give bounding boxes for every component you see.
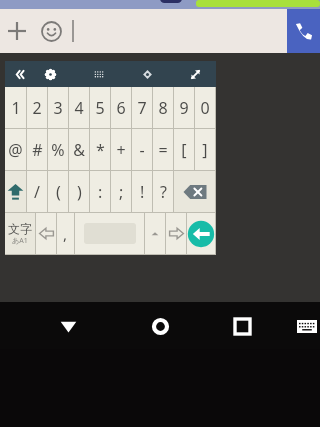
button[interactable]: 3 — [48, 87, 68, 128]
staticText: ? — [160, 181, 167, 203]
button[interactable]: 0 — [195, 87, 215, 128]
button[interactable]: 6 — [111, 87, 131, 128]
button[interactable]: ( — [48, 171, 68, 212]
staticText: 7 — [137, 97, 147, 119]
staticText: * — [96, 139, 105, 161]
button[interactable]: Cursor right — [166, 213, 186, 254]
button[interactable]: Candidates — [145, 213, 165, 254]
button[interactable]: # — [27, 129, 47, 170]
staticText: 0 — [200, 97, 210, 119]
button[interactable]: Switch keyboard — [290, 309, 320, 343]
button[interactable]: ; — [111, 171, 131, 212]
button[interactable]: ] — [195, 129, 215, 170]
button[interactable]: 4 — [69, 87, 89, 128]
button[interactable]: Cursor left — [36, 213, 56, 254]
button[interactable]: @ — [5, 129, 26, 170]
staticText: 6 — [116, 97, 126, 119]
button[interactable]: Recent apps — [222, 306, 262, 346]
button[interactable]: Keyboard layouts — [88, 63, 110, 85]
staticText: / — [34, 181, 40, 203]
button[interactable]: 8 — [153, 87, 173, 128]
button[interactable]: Call — [287, 9, 320, 53]
button[interactable]: * — [90, 129, 110, 170]
button[interactable]: Add attachment — [0, 14, 34, 48]
button[interactable]: Theme — [136, 63, 158, 85]
button[interactable]: Enter — [187, 213, 215, 254]
staticText: & — [73, 139, 85, 161]
button[interactable]: 5 — [90, 87, 110, 128]
staticText: # — [32, 139, 43, 161]
staticText: ; — [119, 181, 124, 203]
staticText: 4 — [74, 97, 84, 119]
staticText: [ — [181, 139, 187, 161]
button[interactable]: ) — [69, 171, 89, 212]
button[interactable]: + — [111, 129, 131, 170]
button[interactable]: Emoji — [34, 14, 68, 48]
button[interactable]: Backspace — [174, 171, 215, 212]
button[interactable]: % — [48, 129, 68, 170]
staticText: 3 — [53, 97, 63, 119]
staticText: ] — [202, 139, 208, 161]
staticText: 1 — [11, 97, 21, 119]
staticText: 2 — [32, 97, 42, 119]
button[interactable]: 9 — [174, 87, 194, 128]
staticText: - — [139, 139, 145, 161]
staticText: : — [98, 181, 103, 203]
staticText: ) — [77, 181, 82, 203]
staticText: = — [158, 139, 168, 161]
staticText: + — [116, 139, 126, 161]
button[interactable]: = — [153, 129, 173, 170]
button[interactable]: ! — [132, 171, 152, 212]
button[interactable]: & — [69, 129, 89, 170]
staticText: ( — [56, 181, 61, 203]
staticText: 8 — [158, 97, 168, 119]
staticText: @ — [8, 139, 23, 161]
staticText: ! — [140, 181, 145, 203]
button[interactable]: 文字 — [5, 213, 35, 254]
button[interactable]: ? — [153, 171, 173, 212]
staticText: 9 — [179, 97, 189, 119]
button[interactable]: / — [27, 171, 47, 212]
staticText: 5 — [95, 97, 105, 119]
button[interactable]: [ — [174, 129, 194, 170]
button[interactable]: Space — [75, 213, 144, 254]
button[interactable]: 2 — [27, 87, 47, 128]
staticText: 文字 — [8, 221, 32, 236]
button[interactable]: Shift — [5, 171, 26, 212]
button[interactable]: - — [132, 129, 152, 170]
button[interactable]: : — [90, 171, 110, 212]
button[interactable]: Settings — [39, 63, 61, 85]
button[interactable]: 7 — [132, 87, 152, 128]
button[interactable]: , — [57, 213, 74, 254]
button[interactable]: Collapse keyboard — [11, 63, 33, 85]
button[interactable]: 1 — [5, 87, 26, 128]
staticText: , — [63, 224, 68, 244]
staticText: あA1 — [12, 236, 28, 246]
button[interactable]: Home — [140, 306, 180, 346]
staticText: % — [51, 139, 65, 161]
button[interactable]: Resize keyboard — [184, 63, 206, 85]
button[interactable]: Back — [48, 306, 88, 346]
